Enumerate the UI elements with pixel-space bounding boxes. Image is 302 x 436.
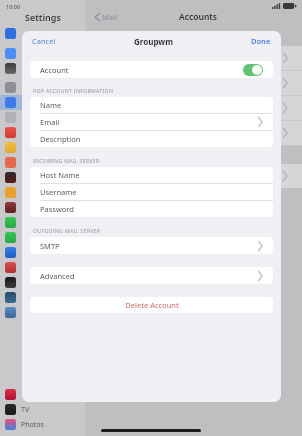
button[interactable] — [0, 110, 85, 125]
button[interactable]: Email — [30, 114, 273, 130]
staticText: Accounts — [179, 11, 217, 23]
button[interactable]: Mail — [93, 10, 119, 24]
button[interactable] — [0, 155, 85, 170]
staticText: Mail — [102, 12, 117, 22]
button[interactable] — [0, 305, 85, 320]
button[interactable]: Done — [249, 34, 273, 48]
button[interactable]: Username — [30, 184, 273, 200]
staticText: Username — [40, 187, 77, 197]
button[interactable] — [0, 200, 85, 215]
button[interactable]: Name — [30, 97, 273, 113]
staticText: Settings — [25, 11, 61, 23]
staticText: Photos — [21, 420, 44, 430]
button[interactable]: Account enabled toggle — [243, 64, 263, 76]
staticText: Name — [40, 100, 62, 110]
button[interactable] — [0, 260, 85, 275]
button[interactable]: Description — [30, 131, 273, 147]
staticText: Cancel — [32, 36, 56, 46]
button[interactable] — [0, 245, 85, 260]
staticText: Description — [40, 134, 81, 144]
button[interactable] — [0, 290, 85, 305]
button[interactable] — [0, 80, 85, 95]
staticText: TV — [21, 405, 30, 415]
button[interactable] — [0, 215, 85, 230]
button[interactable]: SMTP — [30, 237, 273, 254]
staticText: Password — [40, 204, 74, 214]
button[interactable]: Account — [30, 61, 273, 78]
button[interactable]: TV — [0, 402, 85, 417]
staticText: Done — [251, 36, 271, 46]
button[interactable] — [0, 140, 85, 155]
staticText: SMTP — [40, 241, 60, 251]
staticText: Delete Account — [125, 300, 179, 310]
button[interactable] — [0, 275, 85, 290]
button[interactable] — [0, 125, 85, 140]
staticText: 10:00 — [6, 3, 21, 10]
button[interactable] — [0, 46, 85, 61]
button[interactable] — [0, 170, 85, 185]
staticText: POP ACCOUNT INFORMATION — [33, 87, 114, 94]
button[interactable] — [0, 26, 85, 41]
staticText: Email — [40, 117, 60, 127]
button[interactable] — [0, 387, 85, 402]
button[interactable]: Cancel — [30, 34, 58, 48]
button[interactable] — [0, 95, 85, 110]
button[interactable] — [0, 61, 85, 76]
staticText: Groupwm — [134, 36, 173, 47]
button[interactable] — [0, 230, 85, 245]
button[interactable]: Delete Account — [30, 297, 273, 313]
staticText: OUTGOING MAIL SERVER — [33, 227, 101, 234]
staticText: Host Name — [40, 170, 80, 180]
staticText: Account — [40, 65, 69, 75]
button[interactable]: Password — [30, 201, 273, 217]
staticText: Advanced — [40, 271, 75, 281]
button[interactable]: Host Name — [30, 167, 273, 183]
button[interactable]: Photos — [0, 417, 85, 432]
button[interactable] — [0, 185, 85, 200]
button[interactable]: Advanced — [30, 267, 273, 284]
staticText: INCOMING MAIL SERVER — [33, 157, 100, 164]
